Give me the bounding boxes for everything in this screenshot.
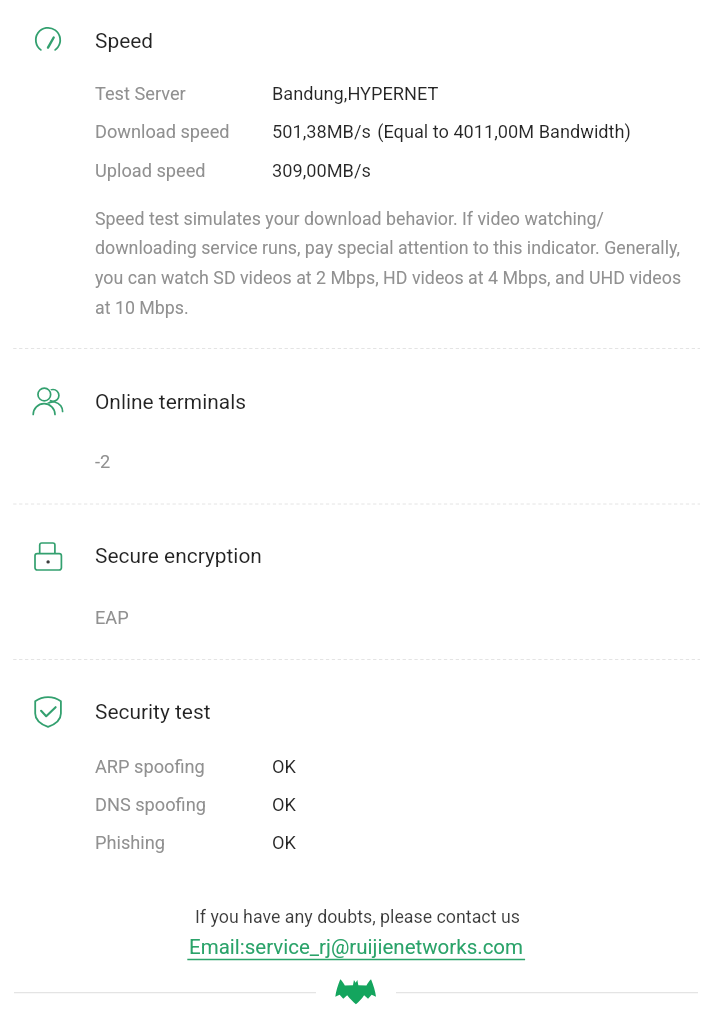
staticText: ARP spoofing (95, 756, 205, 777)
staticText: Phishing (95, 832, 165, 853)
other: Speed (31, 23, 65, 57)
button[interactable]: Secure encryption (0, 505, 712, 659)
other: Online terminals (31, 384, 65, 418)
staticText: Upload speed (95, 160, 206, 181)
button[interactable]: Security test (0, 661, 712, 871)
button[interactable]: Email:service_rj@ruijienetworks.com (186, 934, 527, 964)
staticText: Email:service_rj@ruijienetworks.com (189, 935, 524, 959)
staticText: EAP (95, 607, 129, 628)
staticText: Online terminals (95, 390, 247, 414)
button[interactable]: Speed (0, 0, 712, 347)
staticText: 309,00MB/s (272, 160, 371, 181)
other: Security test (31, 695, 65, 729)
staticText: Speed test simulates your download behav… (95, 208, 682, 319)
staticText: 501,38MB/s (Equal to 4011,00M Bandwidth) (272, 121, 631, 142)
staticText: Speed (95, 29, 154, 53)
button[interactable]: Online terminals (0, 350, 712, 503)
staticText: Security test (95, 700, 211, 724)
other: Secure encryption (31, 539, 65, 573)
staticText: -2 (95, 451, 111, 472)
staticText: OK (272, 756, 296, 777)
staticText: Bandung,HYPERNET (272, 83, 439, 104)
staticText: OK (272, 832, 296, 853)
staticText: Download speed (95, 121, 230, 142)
staticText: OK (272, 794, 296, 815)
staticText: If you have any doubts, please contact u… (195, 906, 520, 927)
staticText: Secure encryption (95, 544, 262, 568)
staticText: DNS spoofing (95, 794, 206, 815)
staticText: Test Server (95, 83, 186, 104)
